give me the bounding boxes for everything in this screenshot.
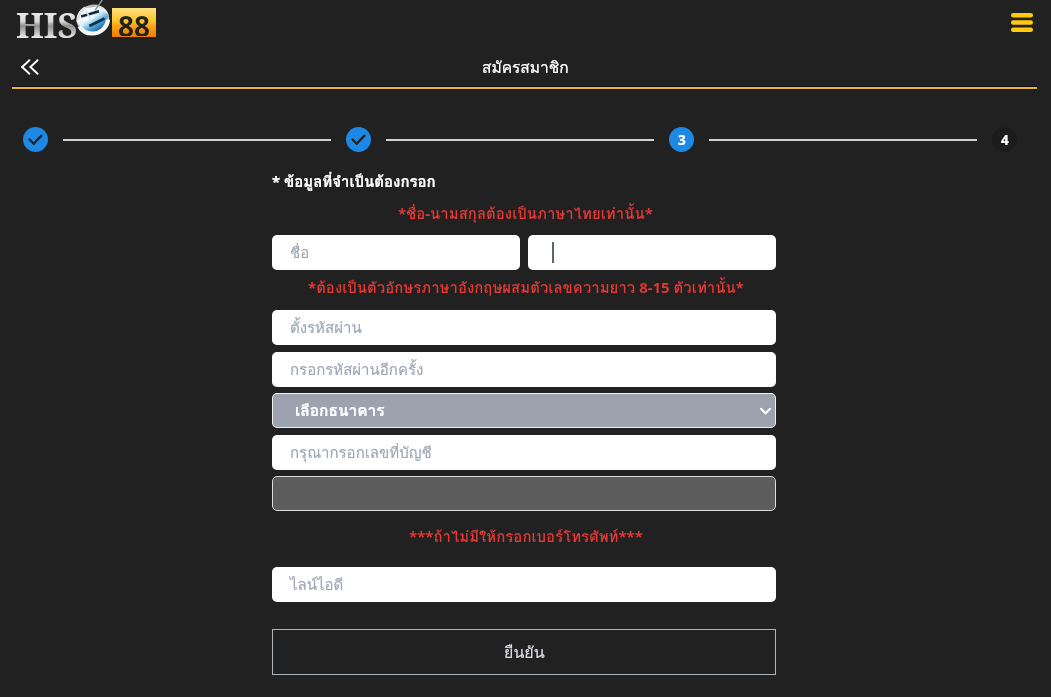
button[interactable]: Back <box>12 50 46 84</box>
button[interactable]: ยืนยัน <box>272 629 776 675</box>
staticText: HIS <box>16 2 78 44</box>
staticText: * ข้อมูลที่จำเป็นต้องกรอก <box>272 170 436 194</box>
button[interactable]: 4 <box>992 127 1017 152</box>
staticText: กรุณากรอกเลขที่บัญชี <box>290 441 432 465</box>
staticText: 88 <box>118 7 151 36</box>
button[interactable]: กรุณากรอกเลขที่บัญชี <box>272 435 776 470</box>
button[interactable]: กรอกรหัสผ่านอีกครั้ง <box>272 352 776 387</box>
button[interactable] <box>528 235 776 270</box>
button[interactable]: Completed step <box>23 127 48 152</box>
staticText: 3 <box>678 131 686 149</box>
staticText: สมัครสมาชิก <box>482 55 569 80</box>
staticText: ***ถ้าไม่มีให้กรอกเบอร์โทรศัพท์*** <box>409 525 643 549</box>
staticText: *ต้องเป็นตัวอักษรภาษาอังกฤษผสมตัวเลขความ… <box>308 276 744 300</box>
button[interactable] <box>272 476 776 511</box>
button[interactable]: เลือกธนาคาร <box>272 393 776 428</box>
staticText: กรอกรหัสผ่านอีกครั้ง <box>290 358 424 382</box>
staticText: *ชื่อ-นามสกุลต้องเป็นภาษาไทยเท่านั้น* <box>398 202 653 226</box>
staticText: 4 <box>1001 131 1009 149</box>
button[interactable]: HISO88 home <box>16 0 162 42</box>
staticText: เลือกธนาคาร <box>295 398 385 423</box>
button[interactable]: ไลน์ไอดี <box>272 567 776 602</box>
staticText: ชื่อ <box>290 241 310 265</box>
staticText: ไลน์ไอดี <box>290 573 344 597</box>
button[interactable]: Completed step <box>346 127 371 152</box>
button[interactable]: ตั้งรหัสผ่าน <box>272 310 776 345</box>
button[interactable]: Menu <box>1004 5 1040 39</box>
staticText: ตั้งรหัสผ่าน <box>290 316 362 340</box>
button[interactable]: ชื่อ <box>272 235 520 270</box>
staticText: ยืนยัน <box>504 640 545 665</box>
button[interactable]: 3 <box>669 127 694 152</box>
